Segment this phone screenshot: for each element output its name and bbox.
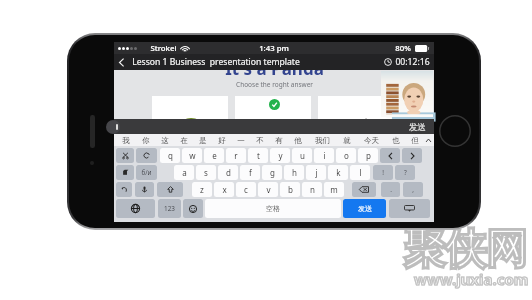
staticText: 这 bbox=[161, 136, 169, 145]
staticText: r bbox=[234, 150, 238, 161]
button[interactable]: 有 bbox=[269, 136, 288, 145]
button[interactable]: 也 bbox=[386, 136, 405, 145]
button[interactable]: 在 bbox=[174, 136, 193, 145]
button[interactable]: Emoji bbox=[183, 199, 203, 218]
button[interactable]: i bbox=[314, 148, 334, 163]
button[interactable] bbox=[318, 96, 394, 124]
button[interactable]: m bbox=[324, 182, 344, 197]
button[interactable]: v bbox=[258, 182, 278, 197]
button[interactable]: б/и bbox=[136, 165, 157, 180]
button[interactable]: Cut bbox=[116, 148, 134, 163]
button[interactable]: 今天 bbox=[356, 136, 386, 145]
staticText: e bbox=[212, 150, 217, 161]
button[interactable]: a bbox=[174, 165, 194, 180]
button[interactable]: 好 bbox=[212, 136, 231, 145]
staticText: x bbox=[222, 184, 227, 195]
button[interactable]: Previous bbox=[380, 148, 400, 163]
button[interactable]: l bbox=[350, 165, 370, 180]
button[interactable]: ! bbox=[373, 165, 393, 180]
button[interactable]: o bbox=[336, 148, 356, 163]
staticText: 我 bbox=[122, 136, 130, 145]
button[interactable]: Undo bbox=[116, 182, 132, 197]
staticText: ? bbox=[404, 168, 407, 177]
staticText: Choose the roght answer bbox=[236, 80, 313, 89]
button[interactable]: Voice input bbox=[106, 120, 120, 134]
button[interactable]: More candidates bbox=[424, 139, 432, 142]
button[interactable]: e bbox=[204, 148, 224, 163]
staticText: 就 bbox=[343, 136, 351, 145]
staticText: i bbox=[323, 150, 326, 161]
staticText: , bbox=[412, 185, 414, 194]
button[interactable]: g bbox=[262, 165, 282, 180]
staticText: 在 bbox=[180, 136, 188, 145]
button[interactable]: 不 bbox=[250, 136, 269, 145]
staticText: 聚侠网 bbox=[404, 224, 527, 276]
button[interactable]: n bbox=[302, 182, 322, 197]
button[interactable] bbox=[235, 96, 311, 124]
staticText: 但 bbox=[411, 136, 419, 145]
button[interactable]: Change input language bbox=[116, 199, 155, 218]
button[interactable]: Next bbox=[402, 148, 422, 163]
button[interactable]: c bbox=[236, 182, 256, 197]
button[interactable]: q bbox=[160, 148, 180, 163]
button[interactable]: b bbox=[280, 182, 300, 197]
button[interactable]: , bbox=[403, 182, 423, 197]
button[interactable]: 就 bbox=[337, 136, 356, 145]
button[interactable]: d bbox=[218, 165, 238, 180]
button[interactable]: 但 bbox=[405, 136, 424, 145]
staticText: d bbox=[226, 167, 231, 178]
button[interactable]: Copy bbox=[116, 165, 134, 180]
button[interactable]: r bbox=[226, 148, 246, 163]
button[interactable]: y bbox=[270, 148, 290, 163]
staticText: o bbox=[344, 150, 349, 161]
staticText: z bbox=[200, 184, 204, 195]
button[interactable]: z bbox=[192, 182, 212, 197]
staticText: 今天 bbox=[364, 136, 379, 145]
button[interactable]: 空格 bbox=[205, 199, 341, 218]
staticText: 发送 bbox=[358, 204, 372, 213]
button[interactable]: 发送 bbox=[343, 199, 386, 218]
button[interactable]: h bbox=[284, 165, 304, 180]
button[interactable]: Shift bbox=[157, 182, 183, 197]
button[interactable]: 123 bbox=[158, 199, 181, 218]
button[interactable]: u bbox=[292, 148, 312, 163]
button[interactable]: 一 bbox=[231, 136, 250, 145]
staticText: 一 bbox=[237, 136, 245, 145]
button[interactable]: f bbox=[240, 165, 260, 180]
button[interactable]: 发送 bbox=[409, 122, 426, 133]
staticText: g bbox=[270, 167, 275, 178]
staticText: 是 bbox=[199, 136, 207, 145]
button[interactable]: . bbox=[381, 182, 400, 197]
button[interactable]: j bbox=[306, 165, 326, 180]
button[interactable]: Switch bbox=[136, 148, 157, 163]
button[interactable] bbox=[152, 96, 228, 124]
button[interactable]: k bbox=[328, 165, 348, 180]
button[interactable]: Backspace bbox=[352, 182, 376, 197]
button[interactable]: Hide keyboard bbox=[389, 199, 430, 218]
staticText: 我们 bbox=[315, 136, 330, 145]
button[interactable]: 这 bbox=[155, 136, 174, 145]
button[interactable]: ? bbox=[395, 165, 415, 180]
button[interactable]: w bbox=[182, 148, 202, 163]
button[interactable]: x bbox=[214, 182, 234, 197]
button[interactable]: 你 bbox=[136, 136, 155, 145]
staticText: б/и bbox=[141, 168, 152, 177]
button[interactable]: 我们 bbox=[307, 136, 337, 145]
staticText: Strokei bbox=[150, 43, 177, 54]
staticText: w bbox=[189, 150, 196, 161]
button[interactable]: s bbox=[196, 165, 216, 180]
button[interactable]: 他 bbox=[288, 136, 307, 145]
staticText: u bbox=[300, 150, 305, 161]
button[interactable]: 是 bbox=[193, 136, 212, 145]
staticText: 也 bbox=[392, 136, 400, 145]
staticText: y bbox=[278, 150, 283, 161]
button[interactable]: p bbox=[358, 148, 378, 163]
staticText: 他 bbox=[294, 136, 302, 145]
button[interactable]: Voice input bbox=[135, 182, 154, 197]
staticText: h bbox=[292, 167, 297, 178]
staticText: 不 bbox=[256, 136, 264, 145]
staticText: b bbox=[288, 184, 293, 195]
button[interactable]: 我 bbox=[116, 136, 136, 145]
button[interactable]: t bbox=[248, 148, 268, 163]
button[interactable]: Back bbox=[115, 54, 128, 70]
